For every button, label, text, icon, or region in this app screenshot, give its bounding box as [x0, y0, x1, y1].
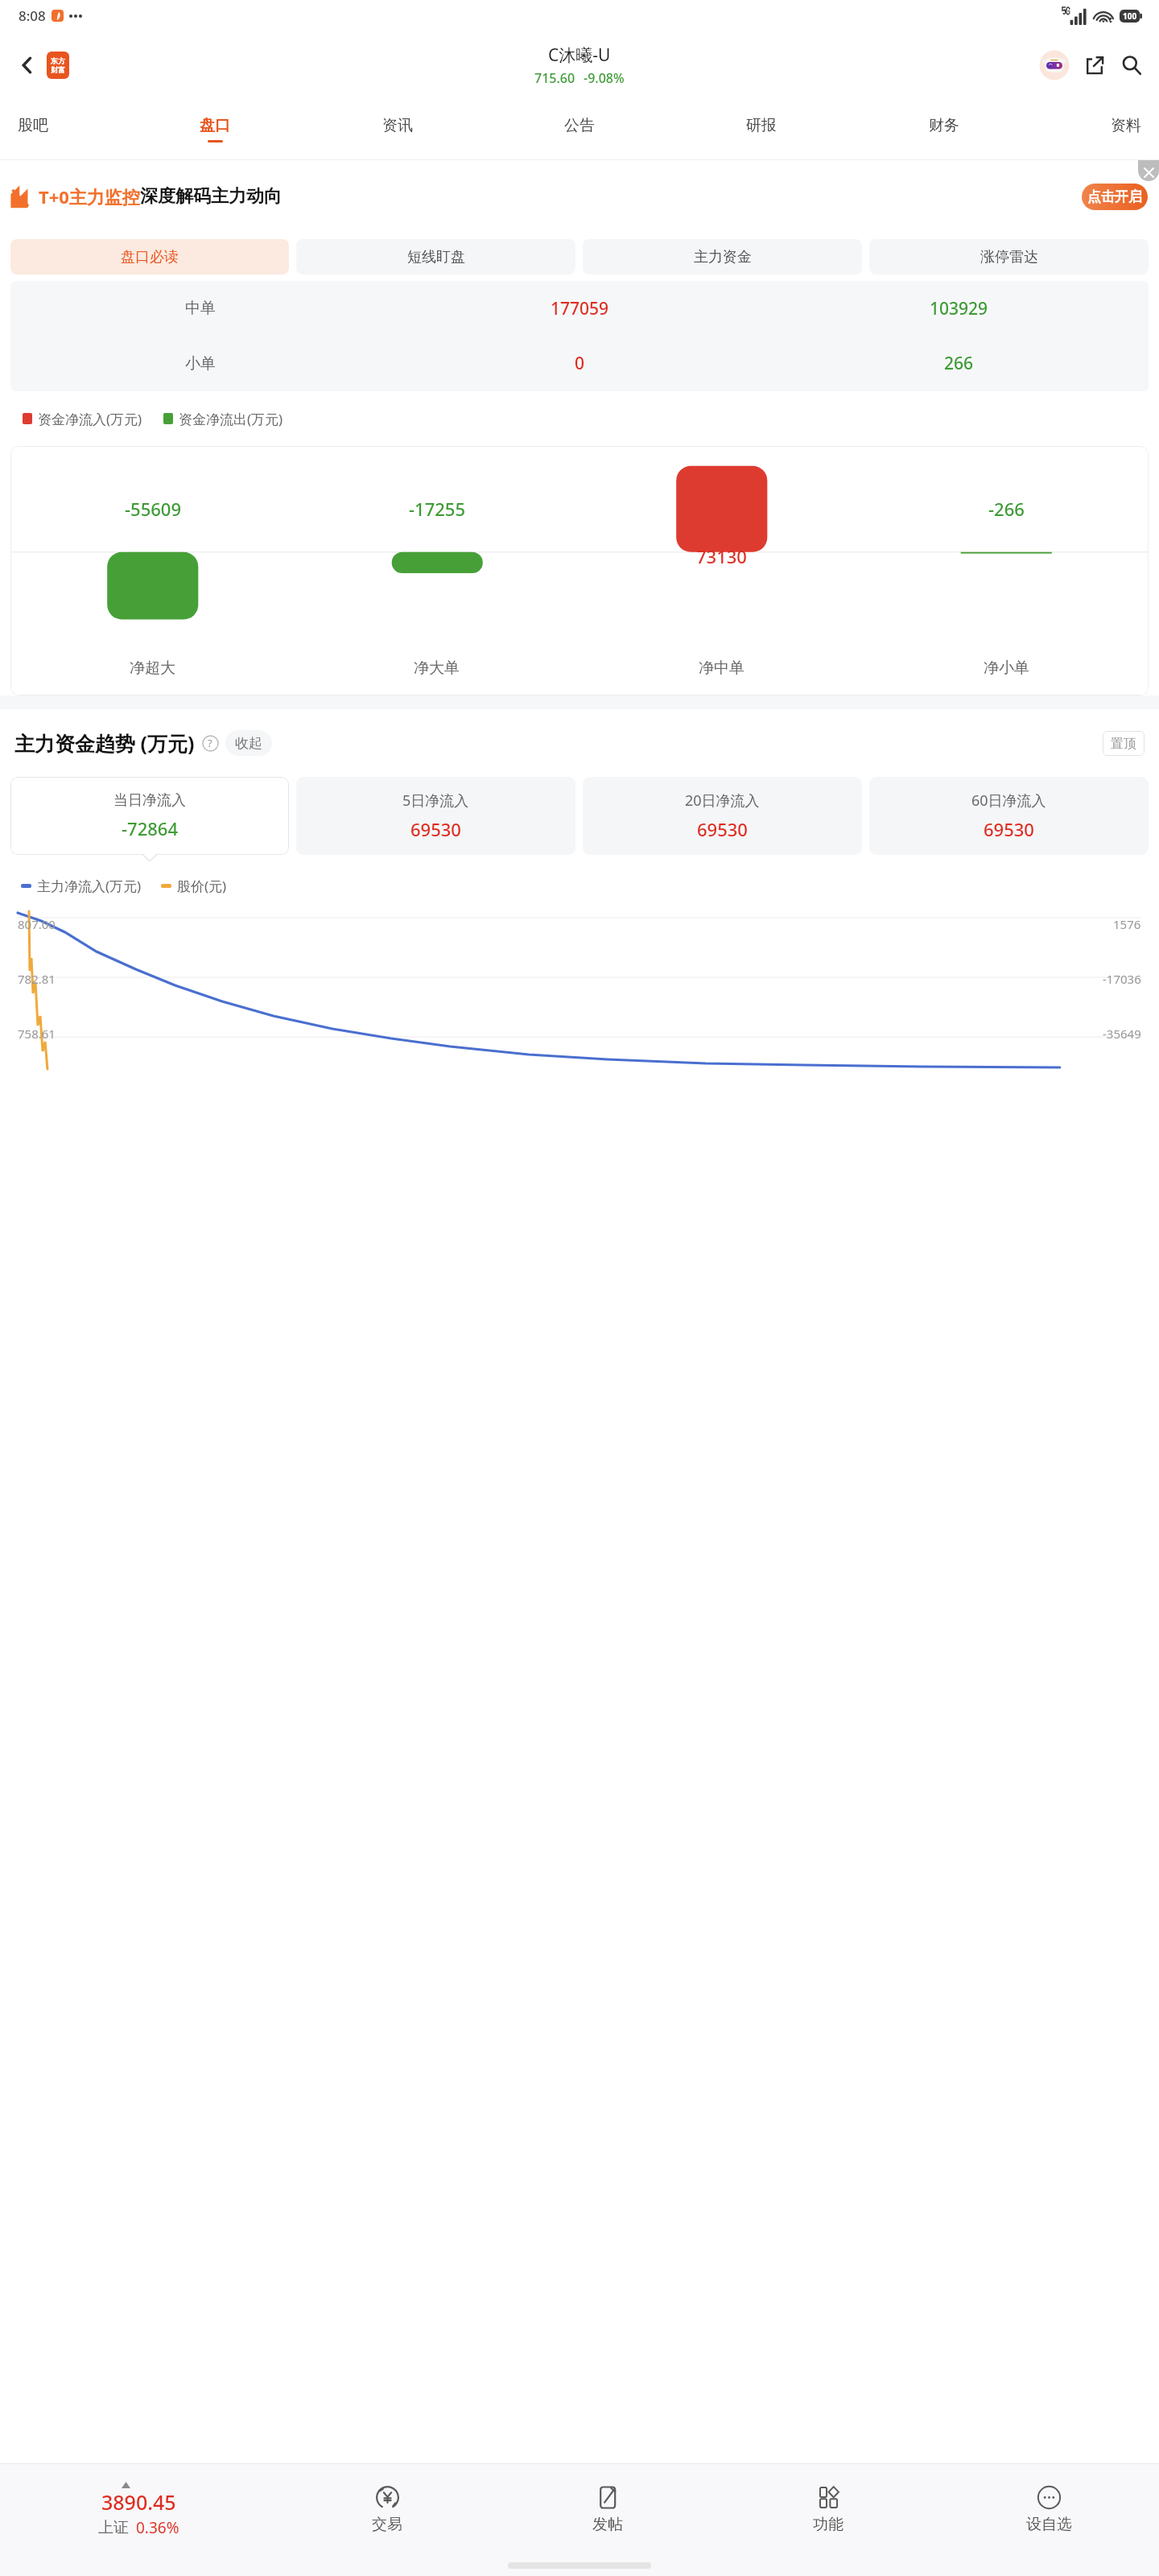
staticText: 69530 — [697, 817, 748, 841]
staticText: 研报 — [746, 116, 777, 135]
button[interactable]: Assistant — [1037, 47, 1072, 83]
button[interactable]: 研报 — [746, 98, 777, 160]
staticText: 177059 — [551, 297, 609, 320]
staticText: 715.60 — [534, 69, 575, 87]
staticText: 100 — [1123, 10, 1137, 22]
button[interactable]: 资讯 — [382, 98, 413, 160]
button[interactable]: 当日净流入 — [10, 777, 289, 855]
button[interactable]: 3890.45 — [0, 2464, 277, 2555]
staticText: 资讯 — [382, 116, 413, 135]
button[interactable]: 点击开启 — [1082, 184, 1148, 210]
staticText: 小单 — [185, 354, 216, 374]
staticText: 财务 — [929, 116, 959, 135]
button[interactable]: 东方 — [47, 52, 69, 79]
button[interactable]: Close ad — [1138, 160, 1159, 181]
staticText: 置顶 — [1111, 736, 1136, 752]
button[interactable]: 20日净流入 — [583, 777, 862, 855]
button[interactable]: 交易 — [277, 2464, 497, 2555]
staticText: ? — [208, 736, 212, 750]
staticText: 设自选 — [1026, 2515, 1072, 2534]
button[interactable]: 设自选 — [938, 2464, 1159, 2555]
staticText: 股价(元) — [177, 877, 227, 895]
staticText: 资料 — [1111, 116, 1141, 135]
button[interactable]: 资料 — [1111, 98, 1141, 160]
staticText: 20日净流入 — [685, 791, 760, 811]
button[interactable]: Share — [1077, 47, 1112, 83]
button[interactable]: 5日净流入 — [296, 777, 575, 855]
staticText: -35649 — [1103, 1026, 1141, 1042]
staticText: 中单 — [185, 299, 216, 318]
staticText: 807.00 — [18, 916, 56, 932]
staticText: -266 — [988, 497, 1025, 521]
staticText: 73130 — [696, 544, 747, 568]
staticText: 当日净流入 — [113, 791, 186, 810]
button[interactable]: 60日净流入 — [869, 777, 1149, 855]
staticText: 股吧 — [18, 116, 48, 135]
staticText: 3890.45 — [101, 2488, 176, 2516]
staticText: 盘口 — [200, 116, 230, 135]
staticText: 主力资金 — [694, 248, 752, 266]
button[interactable]: 盘口必读 — [10, 239, 289, 275]
button[interactable]: Help — [201, 734, 219, 752]
staticText: -72864 — [122, 816, 178, 840]
button[interactable]: 股吧 — [18, 98, 48, 160]
staticText: 财富 — [51, 65, 65, 74]
staticText: 交易 — [372, 2515, 402, 2534]
staticText: 公告 — [564, 116, 595, 135]
button[interactable]: 财务 — [929, 98, 959, 160]
staticText: C沐曦-U — [548, 43, 611, 67]
button[interactable]: 主力资金 — [583, 239, 862, 275]
staticText: 资金净流出(万元) — [179, 410, 283, 428]
button[interactable]: -55609 — [10, 446, 295, 696]
staticText: 0 — [575, 352, 585, 375]
button[interactable]: Search — [1114, 47, 1149, 83]
staticText: 782.81 — [18, 971, 56, 987]
staticText: -17036 — [1103, 971, 1141, 987]
staticText: 上证 — [98, 2518, 129, 2537]
button[interactable]: 功能 — [718, 2464, 938, 2555]
staticText: T+0主力监控 — [39, 184, 140, 208]
staticText: 60日净流入 — [971, 791, 1046, 811]
staticText: 净大单 — [414, 658, 460, 678]
staticText: 0.36% — [136, 2517, 179, 2538]
staticText: 资金净流入(万元) — [38, 410, 142, 428]
staticText: 103929 — [930, 297, 988, 320]
staticText: 266 — [944, 352, 974, 375]
button[interactable]: -17255 — [295, 446, 579, 696]
button[interactable]: 73130 — [579, 446, 864, 696]
button[interactable]: 置顶 — [1103, 731, 1145, 756]
staticText: 深度解码主力动向 — [140, 185, 282, 208]
staticText: 758.61 — [18, 1026, 56, 1042]
button[interactable]: 发帖 — [497, 2464, 718, 2555]
staticText: -9.08% — [584, 69, 625, 87]
staticText: 净小单 — [984, 658, 1029, 678]
staticText: 收起 — [235, 735, 262, 752]
button[interactable]: Back — [10, 47, 45, 83]
staticText: 东方 — [51, 56, 65, 65]
staticText: 点击开启 — [1087, 188, 1142, 205]
staticText: 功能 — [813, 2515, 843, 2534]
staticText: -17255 — [409, 497, 465, 521]
staticText: 1576 — [1113, 916, 1141, 932]
staticText: 8:08 — [19, 6, 46, 25]
staticText: 净中单 — [699, 658, 744, 678]
staticText: 盘口必读 — [121, 248, 179, 266]
button[interactable]: -266 — [864, 446, 1149, 696]
button[interactable]: 盘口 — [200, 98, 230, 160]
staticText: 5日净流入 — [402, 791, 469, 811]
staticText: 主力净流入(万元) — [37, 877, 142, 895]
button[interactable]: 公告 — [564, 98, 595, 160]
staticText: 69530 — [984, 817, 1034, 841]
button[interactable]: 收起 — [225, 730, 272, 756]
button[interactable]: 涨停雷达 — [869, 239, 1149, 275]
staticText: -55609 — [125, 497, 181, 521]
staticText: 69530 — [410, 817, 461, 841]
staticText: 发帖 — [592, 2515, 623, 2534]
button[interactable]: 短线盯盘 — [296, 239, 575, 275]
button[interactable]: T+0主力监控 — [0, 160, 1159, 233]
staticText: 涨停雷达 — [980, 248, 1038, 266]
staticText: 短线盯盘 — [407, 248, 465, 266]
staticText: 净超大 — [130, 658, 175, 678]
staticText: 主力资金趋势 (万元) — [14, 729, 195, 757]
